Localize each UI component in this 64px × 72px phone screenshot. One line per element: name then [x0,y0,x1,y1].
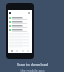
button[interactable]: Tab 1 [10,49,14,53]
staticText: the mobile app [20,68,45,72]
button[interactable]: Menu [9,12,11,14]
button[interactable] [8,24,32,28]
button[interactable]: Tab 2 [15,49,19,53]
button[interactable] [8,28,32,32]
button[interactable] [8,16,32,20]
button[interactable] [8,20,32,24]
button[interactable]: Tab 3 [21,49,25,53]
button[interactable]: Tab 4 [26,49,30,53]
staticText: Scan to download [17,62,48,67]
